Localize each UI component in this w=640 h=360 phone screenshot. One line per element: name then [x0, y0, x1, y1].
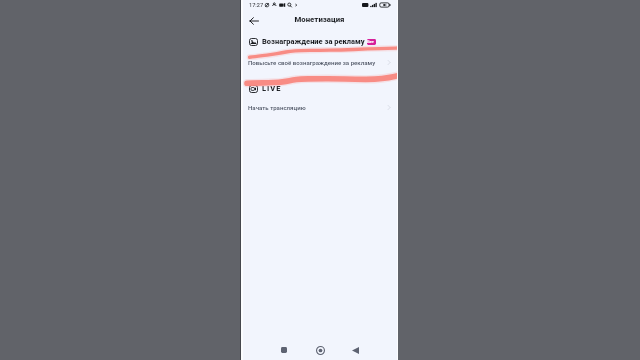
- staticText: LIVE: [262, 84, 282, 93]
- button[interactable]: Начать трансляцию: [241, 99, 398, 115]
- staticText: Бета: [367, 39, 376, 45]
- staticText: Начать трансляцию: [248, 104, 306, 111]
- button[interactable]: Главный экран: [309, 339, 331, 360]
- button[interactable]: Назад: [344, 339, 366, 360]
- staticText: Повысьте своё вознаграждение за рекламу: [248, 59, 376, 66]
- button[interactable]: Повысьте своё вознаграждение за рекламу: [241, 54, 398, 70]
- button[interactable]: Обзор: [273, 339, 295, 360]
- button[interactable]: Назад: [246, 13, 262, 29]
- staticText: Монетизация: [241, 15, 398, 24]
- staticText: 17:27: [249, 2, 264, 9]
- staticText: Вознаграждение за рекламу: [262, 37, 365, 46]
